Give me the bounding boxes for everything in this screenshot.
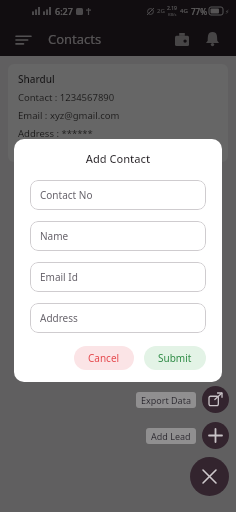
staticText: Address : ****** xyxy=(18,127,93,140)
button[interactable]: Email Id xyxy=(30,262,206,292)
staticText: 4G xyxy=(180,7,188,15)
staticText: Name xyxy=(40,229,69,243)
staticText: ⚡ xyxy=(225,8,230,15)
button[interactable]: Notifications xyxy=(200,27,224,51)
staticText: Contact : 1234567890 xyxy=(18,91,115,104)
staticText: 2.19 xyxy=(167,5,177,12)
other: Export Data xyxy=(202,386,229,413)
staticText: Address xyxy=(40,311,78,325)
button[interactable]: Address xyxy=(30,303,206,333)
staticText: Contacts xyxy=(48,30,102,48)
button[interactable]: Shardul xyxy=(8,64,228,162)
staticText: Add Lead xyxy=(151,430,191,442)
button[interactable]: Name xyxy=(30,221,206,251)
staticText: 2G xyxy=(157,7,165,15)
button[interactable]: Close menu xyxy=(190,457,229,496)
other: Add Lead xyxy=(202,422,229,449)
staticText: Email : xyz@gmail.com xyxy=(18,109,120,122)
staticText: Export Data xyxy=(141,394,191,406)
staticText: 6:27 xyxy=(55,5,73,17)
staticText: Shardul xyxy=(18,72,55,86)
button[interactable]: Contact No xyxy=(30,180,206,210)
button[interactable]: Cancel xyxy=(74,346,134,370)
button[interactable]: Export Data xyxy=(136,386,229,413)
staticText: Email Id xyxy=(40,270,78,284)
button[interactable]: Submit xyxy=(144,346,206,370)
button[interactable]: Open navigation menu xyxy=(12,28,34,50)
staticText: KB/s xyxy=(168,12,177,17)
staticText: Contact No xyxy=(40,188,93,202)
staticText: 77% xyxy=(191,6,207,17)
button[interactable]: Business xyxy=(170,27,194,51)
button[interactable]: Add Lead xyxy=(146,422,229,449)
staticText: Submit xyxy=(158,351,192,365)
staticText: Cancel xyxy=(88,351,120,365)
staticText: Add Contact xyxy=(30,151,206,166)
